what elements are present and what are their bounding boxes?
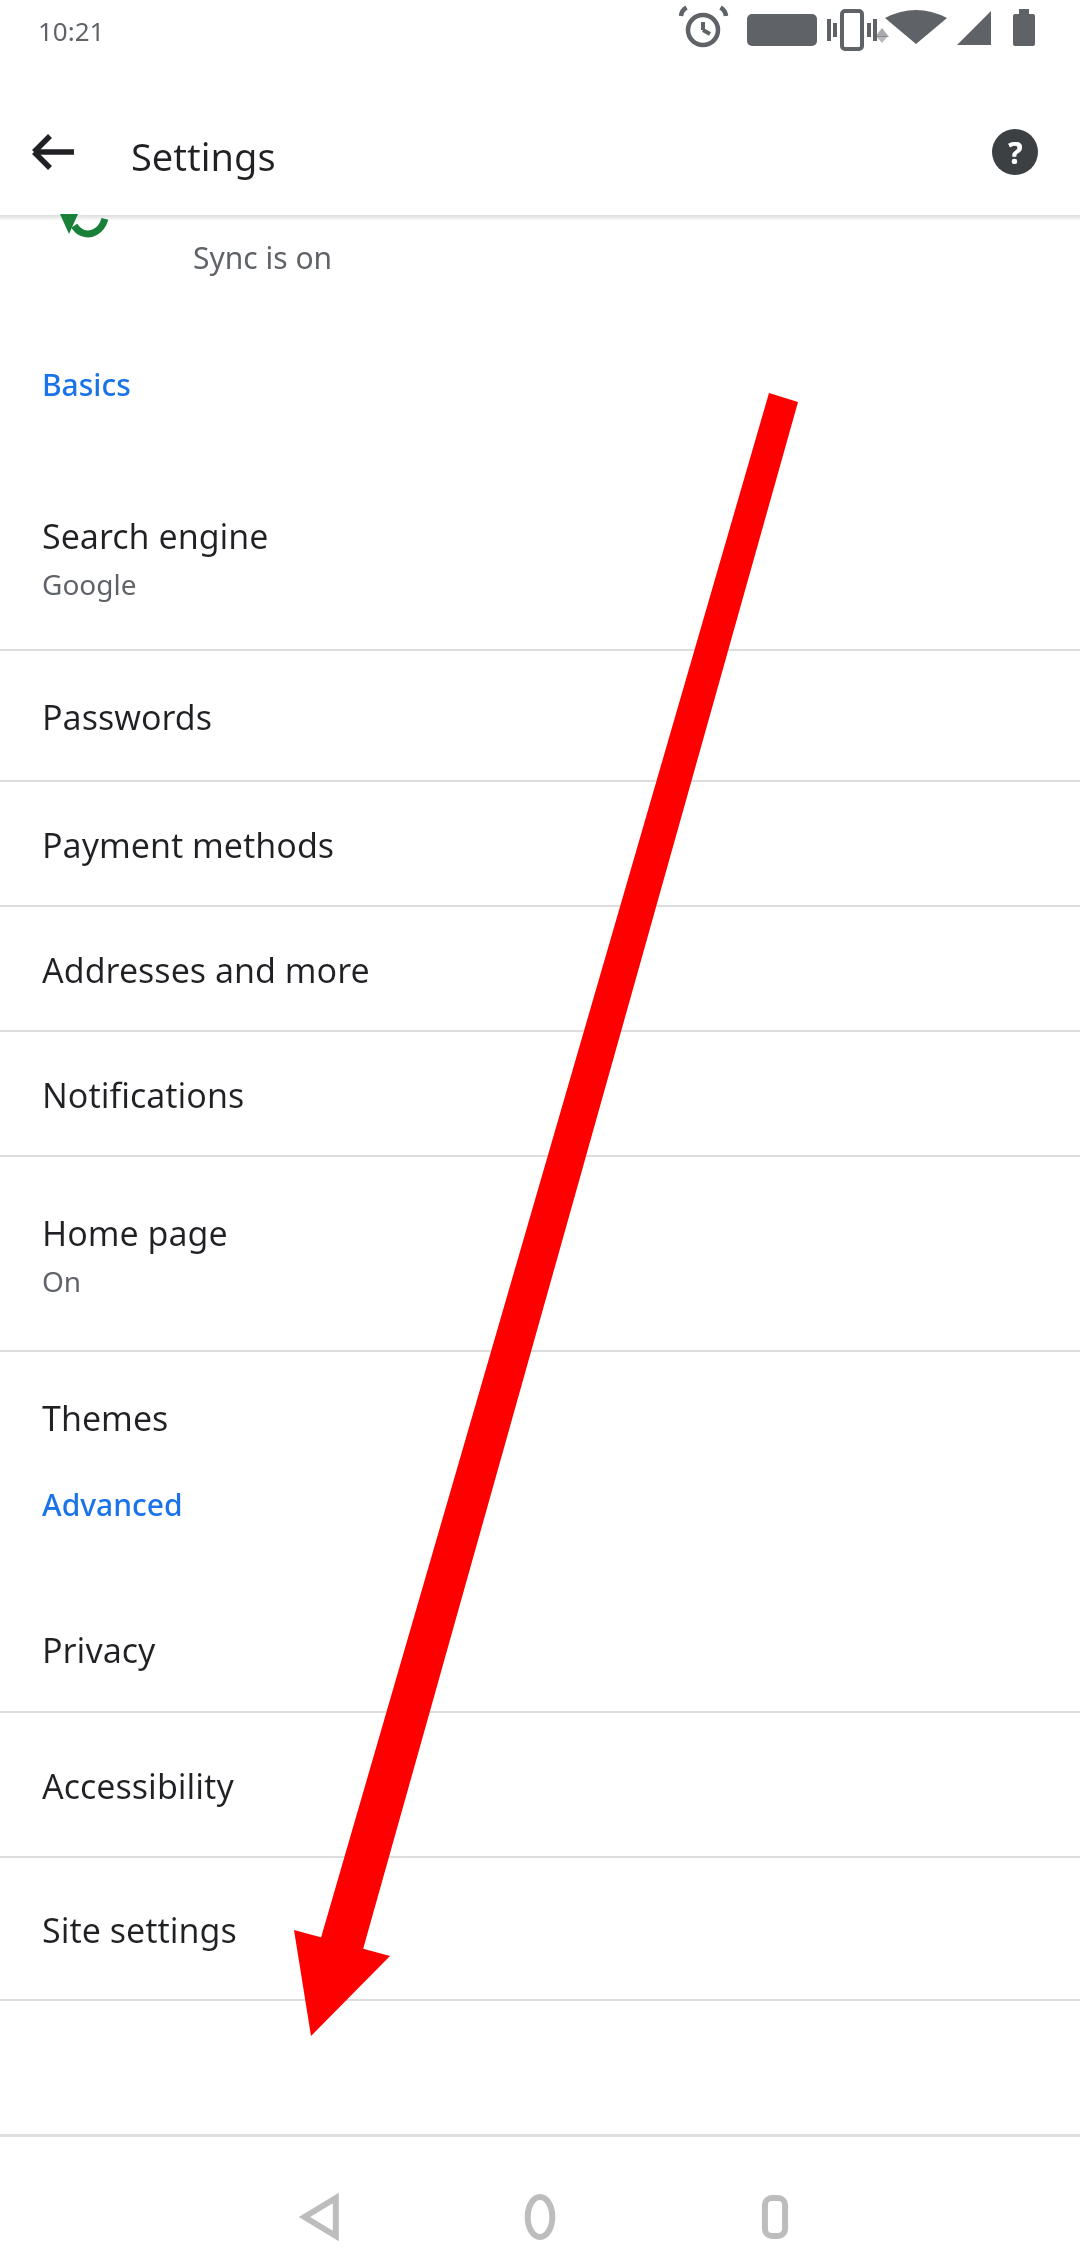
staticText: Basics xyxy=(42,364,131,405)
staticText: Settings xyxy=(131,130,276,182)
staticText: Payment methods xyxy=(42,822,335,868)
button[interactable]: Back xyxy=(258,2154,386,2260)
button[interactable]: Back xyxy=(12,110,96,194)
staticText: Site settings xyxy=(42,1907,237,1953)
button[interactable]: Themes xyxy=(0,1352,1080,1483)
button[interactable]: Addresses and more xyxy=(0,907,1080,1032)
button[interactable]: Search engine xyxy=(0,465,1080,651)
staticText: Advanced xyxy=(42,1484,183,1525)
button[interactable]: Site settings xyxy=(0,1858,1080,2001)
staticText: Addresses and more xyxy=(42,947,370,993)
staticText: Google xyxy=(42,565,137,603)
staticText: Notifications xyxy=(42,1072,245,1118)
staticText: Passwords xyxy=(42,694,213,740)
button[interactable]: Home page xyxy=(0,1157,1080,1352)
button[interactable]: Payment methods xyxy=(0,782,1080,907)
button[interactable]: Home xyxy=(476,2154,604,2260)
staticText: Sync is on xyxy=(193,237,333,278)
button[interactable]: Help xyxy=(973,110,1057,194)
staticText: 10:21 xyxy=(38,13,105,48)
button[interactable]: Privacy xyxy=(0,1587,1080,1713)
button[interactable]: Passwords xyxy=(0,651,1080,782)
staticText: Accessibility xyxy=(42,1763,234,1809)
staticText: ? xyxy=(1008,132,1023,173)
button[interactable]: Recent apps xyxy=(711,2154,839,2260)
staticText: Search engine xyxy=(42,513,269,559)
staticText: Themes xyxy=(42,1395,169,1441)
button[interactable]: Notifications xyxy=(0,1032,1080,1157)
staticText: On xyxy=(42,1262,82,1300)
staticText: Home page xyxy=(42,1210,228,1256)
staticText: Privacy xyxy=(42,1627,156,1673)
button[interactable]: Accessibility xyxy=(0,1713,1080,1858)
